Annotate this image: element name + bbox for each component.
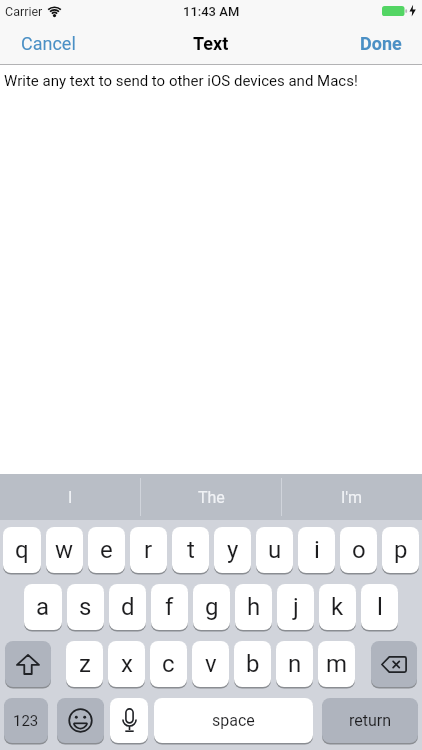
staticText: Cancel [21,33,76,54]
staticText: j [293,593,299,621]
staticText: f [165,593,174,621]
button[interactable]: v [192,641,229,687]
staticText: o [352,536,366,564]
staticText: i [314,536,320,564]
button[interactable] [57,698,104,743]
button[interactable]: c [150,641,187,687]
staticText: I'm [341,488,363,507]
button[interactable] [110,698,148,743]
button[interactable] [371,641,417,687]
button[interactable]: m [318,641,355,687]
staticText: b [246,650,260,678]
staticText: 123 [13,712,39,730]
staticText: Text [193,33,229,54]
staticText: x [121,650,133,678]
staticText: Carrier [5,4,43,19]
button[interactable]: Cancel [0,27,86,60]
button[interactable]: u [256,527,293,573]
staticText: Write any text to send to other iOS devi… [4,72,358,90]
staticText: v [205,650,217,678]
button[interactable]: Done [350,27,422,60]
staticText: p [394,536,408,564]
button[interactable]: The [141,474,281,520]
button[interactable]: w [46,527,83,573]
staticText: I [68,488,73,507]
staticText: g [205,593,219,621]
staticText: c [162,650,175,678]
staticText: 11:43 AM [183,4,240,19]
button[interactable]: p [382,527,419,573]
button[interactable]: t [172,527,209,573]
staticText: r [144,536,153,564]
button[interactable]: d [109,584,146,630]
button[interactable]: k [319,584,356,630]
button[interactable]: f [151,584,188,630]
staticText: y [227,536,239,564]
button[interactable]: q [3,527,41,573]
staticText: l [377,593,383,621]
button[interactable]: I'm [282,474,422,520]
staticText: The [198,488,225,507]
button[interactable]: n [276,641,313,687]
button[interactable]: y [214,527,251,573]
button[interactable]: h [235,584,272,630]
button[interactable]: a [24,584,62,630]
button[interactable]: z [66,641,103,687]
staticText: Done [360,33,402,54]
button[interactable]: 123 [4,698,48,743]
button[interactable]: b [234,641,271,687]
button[interactable]: e [88,527,125,573]
staticText: d [121,593,135,621]
button[interactable]: x [108,641,145,687]
staticText: u [268,536,282,564]
button[interactable] [5,641,51,687]
button[interactable]: j [277,584,314,630]
button[interactable]: s [67,584,104,630]
staticText: h [247,593,261,621]
button[interactable]: i [298,527,335,573]
staticText: q [15,536,29,564]
staticText: return [349,711,392,730]
button[interactable]: l [361,584,398,630]
staticText: z [79,650,91,678]
staticText: m [326,650,348,678]
staticText: n [288,650,302,678]
staticText: k [331,593,344,621]
staticText: a [36,593,50,621]
button[interactable]: return [322,698,418,743]
button[interactable]: o [340,527,377,573]
staticText: w [55,536,74,564]
button[interactable]: g [193,584,230,630]
button[interactable]: space [154,698,313,743]
staticText: s [79,593,92,621]
button[interactable]: r [130,527,167,573]
staticText: space [212,711,255,730]
staticText: e [100,536,113,564]
staticText: t [187,536,195,564]
